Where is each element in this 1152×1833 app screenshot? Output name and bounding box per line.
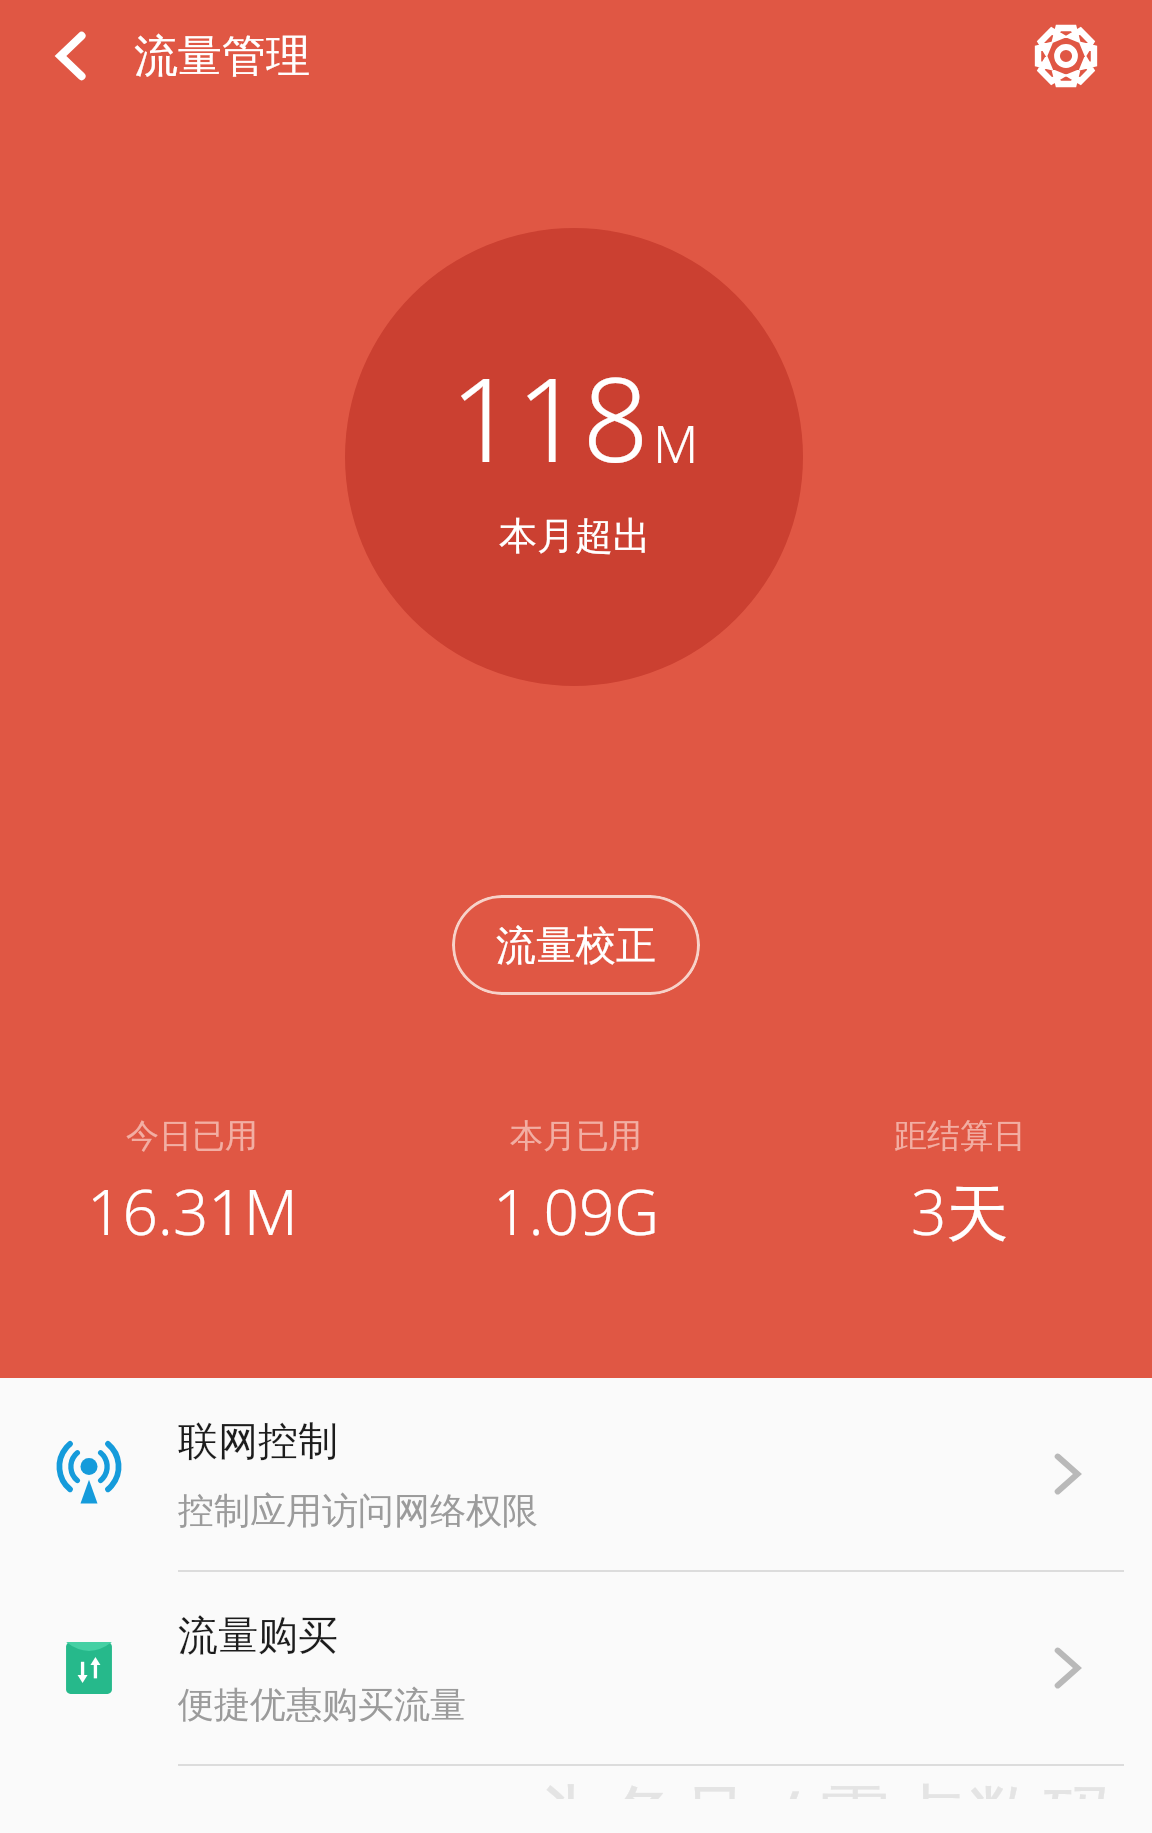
staticText: 流量管理 bbox=[134, 29, 310, 84]
staticText: 1.09G bbox=[493, 1169, 660, 1253]
staticText: 本月超出 bbox=[499, 512, 651, 560]
staticText: 联网控制 bbox=[178, 1416, 338, 1466]
staticText: 3天 bbox=[911, 1169, 1009, 1254]
staticText: 118 bbox=[450, 338, 649, 496]
staticText: 本月已用 bbox=[510, 1115, 642, 1157]
staticText: 距结算日 bbox=[894, 1115, 1026, 1157]
button[interactable]: 流量购买 bbox=[0, 1572, 1152, 1764]
staticText: 流量校正 bbox=[496, 920, 656, 970]
staticText: 控制应用访问网络权限 bbox=[178, 1488, 538, 1533]
staticText: 今日已用 bbox=[126, 1115, 258, 1157]
staticText: 便捷优惠购买流量 bbox=[178, 1682, 466, 1727]
button[interactable]: 流量校正 bbox=[452, 895, 700, 995]
button[interactable]: 联网控制 bbox=[0, 1378, 1152, 1570]
staticText: 16.31M bbox=[87, 1169, 298, 1253]
button[interactable]: Back bbox=[26, 11, 116, 101]
button[interactable]: Settings bbox=[1020, 10, 1112, 102]
staticText: 头条号 / 零点数码 bbox=[531, 1766, 1116, 1799]
staticText: M bbox=[653, 407, 699, 478]
staticText: 流量购买 bbox=[178, 1610, 338, 1660]
